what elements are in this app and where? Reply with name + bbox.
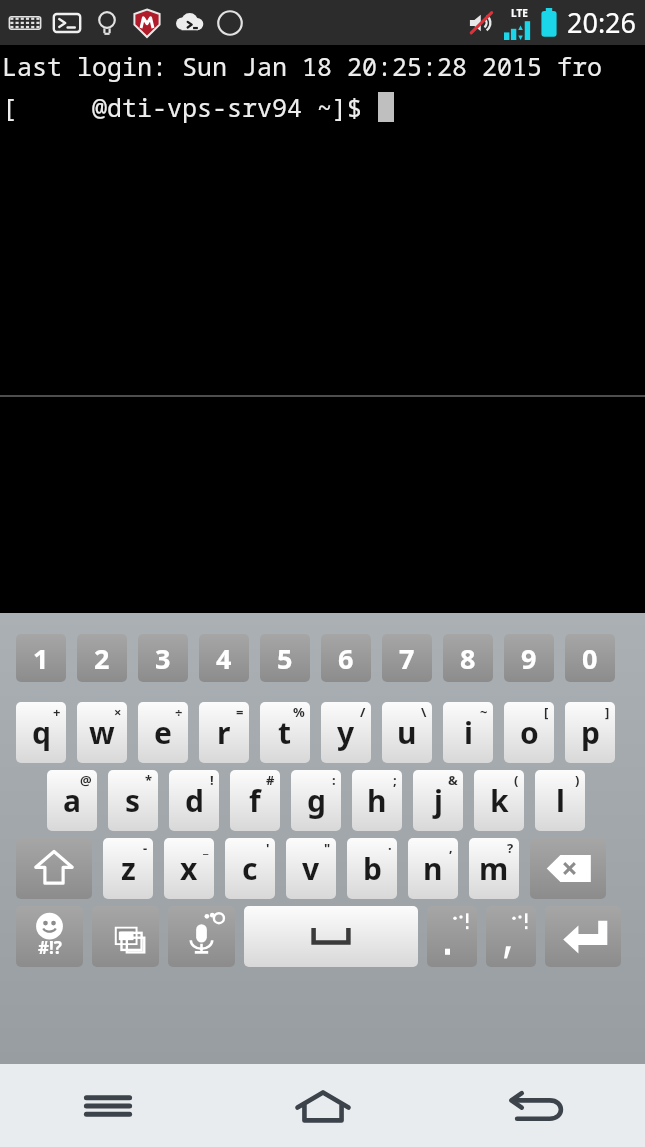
button[interactable]: z [103,838,153,899]
button[interactable]: b [347,838,397,899]
button[interactable]: Menu [0,1064,215,1147]
staticText: 2 [94,640,110,677]
staticText: g [307,780,326,821]
button[interactable]: Period [427,906,477,967]
staticText: % [293,703,305,721]
button[interactable]: 2 [77,634,127,682]
button[interactable]: o [504,702,554,763]
staticText: ~ [480,703,488,721]
button[interactable]: Symbols [16,906,83,967]
staticText: @ [80,771,92,789]
button[interactable]: Home [215,1064,430,1147]
staticText: - [143,839,148,857]
other: Battery [539,8,559,38]
staticText: 1 [33,640,49,677]
button[interactable]: l [535,770,585,831]
button[interactable]: 0 [565,634,615,682]
staticText: 7 [399,640,415,677]
staticText: LTE [511,6,528,20]
button[interactable]: a [47,770,97,831]
button[interactable]: t [260,702,310,763]
button[interactable]: f [230,770,280,831]
button[interactable]: h [352,770,402,831]
button[interactable]: Shift [16,838,92,899]
staticText: ; [393,771,397,789]
staticText: m [479,848,509,889]
button[interactable]: p [565,702,615,763]
staticText: + [53,703,61,721]
button[interactable]: 7 [382,634,432,682]
button[interactable]: w [77,702,127,763]
button[interactable]: Space [244,906,418,967]
staticText: & [448,771,458,789]
button[interactable]: 6 [321,634,371,682]
button[interactable]: m [469,838,519,899]
staticText: _ [203,839,209,857]
other: Terminal [52,9,82,37]
button[interactable]: q [16,702,66,763]
staticText: k [490,780,509,821]
button[interactable]: v [286,838,336,899]
staticText: ] [605,703,610,721]
other: Security [132,7,162,39]
staticText: j [434,780,443,821]
staticText: z [121,848,136,889]
staticText: i [464,712,473,753]
button[interactable]: y [321,702,371,763]
staticText: n [423,848,443,889]
button[interactable]: 8 [443,634,493,682]
button[interactable]: Switch keyboard [92,906,159,967]
staticText: ! [210,771,214,789]
button[interactable]: n [408,838,458,899]
button[interactable]: 3 [138,634,188,682]
button[interactable]: Back [430,1064,645,1147]
button[interactable]: r [199,702,249,763]
staticText: 6 [338,640,354,677]
staticText: 9 [521,640,537,677]
staticText: d [185,780,204,821]
staticText: [ @dti-vps-srv94 ~]$ [2,90,378,124]
button[interactable]: Comma [486,906,536,967]
button[interactable]: s [108,770,158,831]
button[interactable]: Backspace [530,838,606,899]
staticText: 0 [582,640,598,677]
other: Keyboard [8,10,42,36]
button[interactable]: i [443,702,493,763]
staticText: ' [266,839,270,857]
button[interactable]: j [413,770,463,831]
staticText: 20:26 [567,4,637,41]
button[interactable]: 5 [260,634,310,682]
button[interactable]: u [382,702,432,763]
staticText: · [388,839,392,857]
staticText: l [556,780,565,821]
staticText: Last login: Sun Jan 18 20:25:28 2015 fro [2,49,603,83]
staticText: #!? [38,936,62,959]
staticText: ÷ [175,703,183,721]
staticText: [ [544,703,549,721]
button[interactable]: Voice input [168,906,235,967]
button[interactable]: c [225,838,275,899]
button[interactable]: e [138,702,188,763]
button[interactable]: 9 [504,634,554,682]
staticText: t [278,712,292,753]
button[interactable]: Enter [545,906,621,967]
staticText: # [266,771,275,789]
button[interactable]: g [291,770,341,831]
staticText: × [114,703,122,721]
button[interactable]: 1 [16,634,66,682]
staticText: b [363,848,382,889]
button[interactable]: 4 [199,634,249,682]
staticText: v [302,848,320,889]
staticText: f [249,780,261,821]
staticText: r [217,712,231,753]
button[interactable]: d [169,770,219,831]
staticText: * [145,771,153,789]
staticText: h [367,780,387,821]
staticText: 8 [460,640,476,677]
staticText: / [360,703,366,721]
button[interactable]: k [474,770,524,831]
button[interactable]: x [164,838,214,899]
staticText: w [89,712,115,753]
staticText: = [236,703,244,721]
staticText: 4 [216,640,232,677]
